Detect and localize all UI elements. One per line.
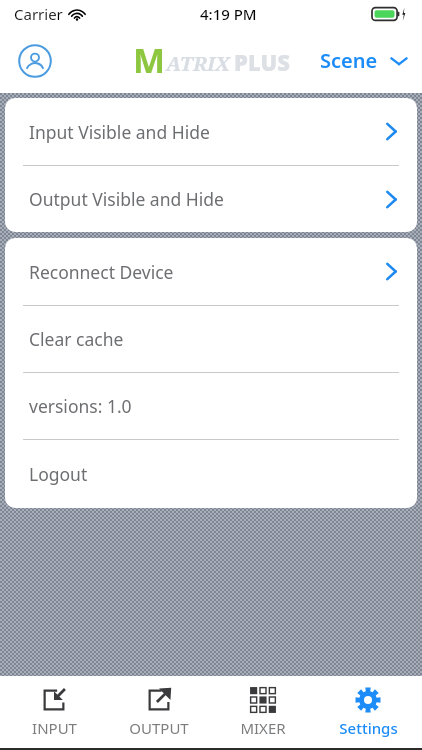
button[interactable]: Profile xyxy=(12,38,58,84)
button[interactable]: Settings xyxy=(318,681,418,744)
button[interactable]: Scene xyxy=(316,41,412,80)
staticText: Output Visible and Hide xyxy=(29,187,224,211)
staticText: 4:19 PM xyxy=(200,4,257,24)
staticText: PLUS xyxy=(234,47,290,77)
staticText: versions: 1.0 xyxy=(29,394,132,418)
button[interactable]: Output Visible and Hide xyxy=(5,166,417,232)
staticText: MIXER xyxy=(240,718,286,738)
staticText: Carrier xyxy=(14,4,63,24)
staticText: Reconnect Device xyxy=(29,260,174,284)
button[interactable]: Logout xyxy=(5,440,417,508)
button[interactable]: versions: 1.0 xyxy=(5,373,417,439)
button[interactable]: Clear cache xyxy=(5,306,417,372)
staticText: Scene xyxy=(320,47,378,74)
staticText: OUTPUT xyxy=(129,718,189,738)
button[interactable]: MIXER xyxy=(213,681,313,744)
staticText: Settings xyxy=(339,718,398,738)
button[interactable]: Reconnect Device xyxy=(5,238,417,305)
staticText: M xyxy=(133,37,166,83)
staticText: Logout xyxy=(29,462,88,486)
staticText: ATRIX xyxy=(166,50,230,77)
staticText: INPUT xyxy=(32,718,77,738)
button[interactable]: INPUT xyxy=(4,681,104,744)
staticText: Input Visible and Hide xyxy=(29,120,210,144)
staticText: Clear cache xyxy=(29,327,124,351)
button[interactable]: Input Visible and Hide xyxy=(5,98,417,165)
button[interactable]: OUTPUT xyxy=(109,681,209,744)
